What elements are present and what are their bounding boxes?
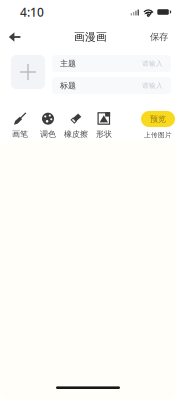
button[interactable]: 主题 bbox=[52, 55, 171, 72]
button[interactable]: 画笔 bbox=[6, 111, 34, 139]
staticText: 标题 bbox=[60, 81, 76, 90]
staticText: 请输入 bbox=[142, 59, 163, 68]
staticText: 画漫画 bbox=[74, 30, 107, 43]
button[interactable]: 橡皮擦 bbox=[62, 111, 90, 139]
staticText: 保存 bbox=[150, 31, 168, 43]
staticText: 橡皮擦 bbox=[64, 129, 88, 139]
staticText: 4:10 bbox=[20, 4, 44, 20]
staticText: 画笔 bbox=[12, 129, 28, 139]
button[interactable]: 形状 bbox=[90, 111, 118, 139]
button[interactable]: 添加封面 bbox=[11, 55, 45, 89]
staticText: 预览 bbox=[150, 114, 166, 124]
button[interactable]: 标题 bbox=[52, 77, 171, 94]
staticText: 上传图片 bbox=[144, 131, 172, 139]
button[interactable]: 调色 bbox=[34, 111, 62, 139]
button[interactable]: 返回 bbox=[8, 25, 26, 49]
staticText: 形状 bbox=[96, 129, 112, 139]
button[interactable]: 保存 bbox=[147, 26, 171, 48]
staticText: 请输入 bbox=[142, 81, 163, 90]
button[interactable]: 预览 bbox=[141, 111, 175, 127]
staticText: 调色 bbox=[40, 129, 56, 139]
staticText: 主题 bbox=[60, 59, 76, 68]
